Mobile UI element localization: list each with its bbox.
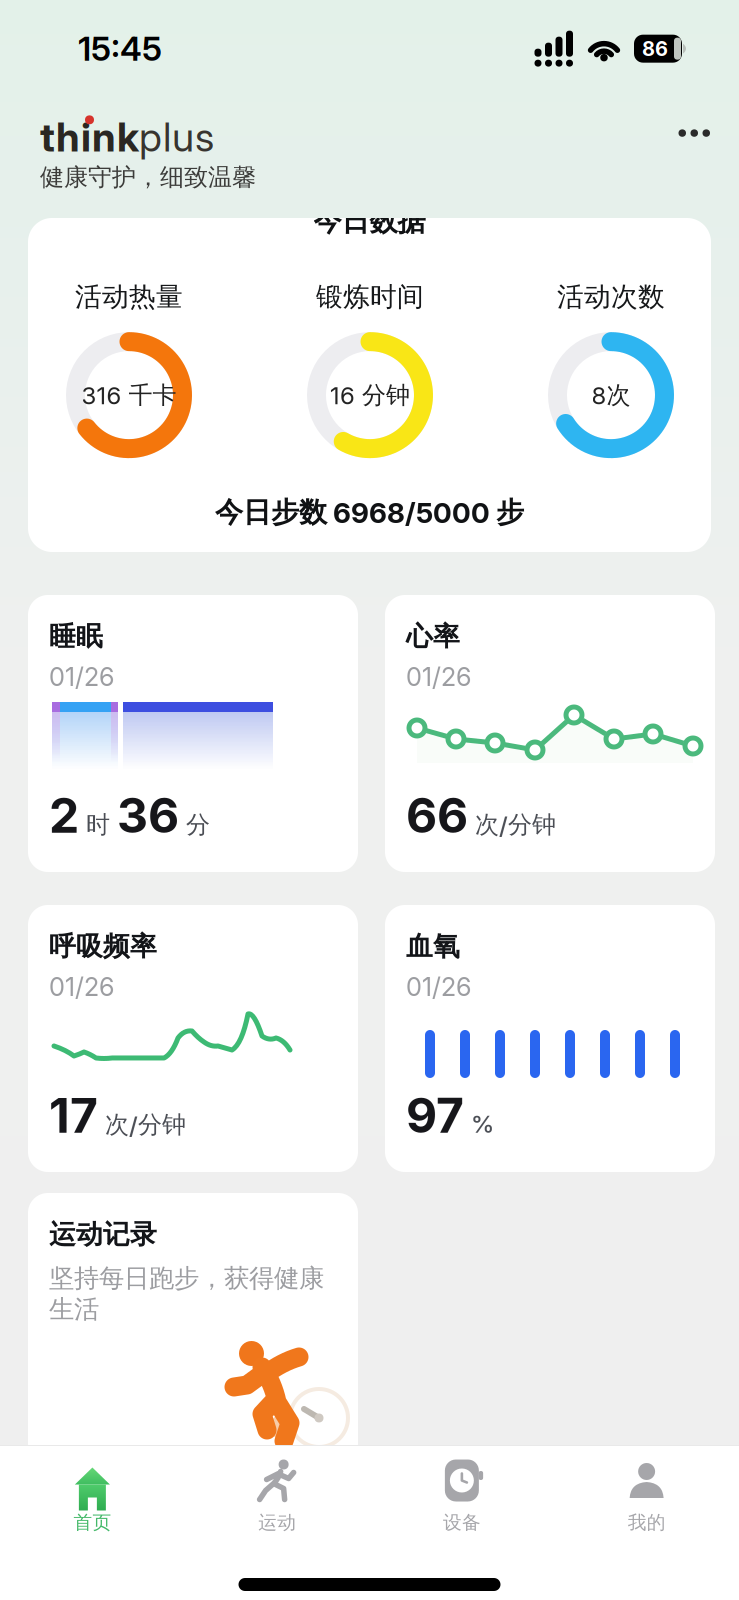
staticText: 运动记录 bbox=[49, 1218, 157, 1251]
button[interactable]: 设备 bbox=[369, 1459, 554, 1534]
button[interactable]: 呼吸频率 bbox=[28, 905, 358, 1172]
staticText: 今日步数 6968/5000 步 bbox=[215, 495, 524, 529]
staticText: 2 bbox=[49, 787, 79, 844]
staticText: 316 千卡 bbox=[81, 380, 176, 410]
staticText: 86 bbox=[642, 37, 668, 60]
staticText: 心率 bbox=[406, 620, 460, 653]
staticText: 运动 bbox=[258, 1511, 296, 1534]
staticText: 8次 bbox=[591, 380, 630, 410]
button[interactable]: 我的 bbox=[554, 1459, 739, 1534]
button[interactable]: Home bbox=[238, 1578, 500, 1591]
button[interactable]: 运动记录 bbox=[28, 1193, 358, 1463]
staticText: 次/分钟 bbox=[475, 810, 556, 839]
staticText: 活动热量 bbox=[75, 280, 183, 313]
staticText: 设备 bbox=[443, 1511, 481, 1534]
staticText: 我的 bbox=[628, 1511, 666, 1534]
staticText: 01/26 bbox=[49, 662, 114, 692]
staticText: 睡眠 bbox=[49, 620, 103, 653]
button[interactable]: 血氧 bbox=[385, 905, 715, 1172]
staticText: 36 bbox=[117, 787, 179, 844]
staticText: 健康守护，细致温馨 bbox=[40, 162, 256, 192]
staticText: 活动次数 bbox=[557, 280, 665, 313]
staticText: think bbox=[40, 113, 139, 160]
staticText: 16 分钟 bbox=[330, 380, 410, 410]
staticText: 分 bbox=[186, 810, 210, 839]
staticText: 首页 bbox=[73, 1511, 111, 1534]
staticText: 次/分钟 bbox=[105, 1110, 186, 1139]
staticText: 15:45 bbox=[78, 29, 162, 68]
button[interactable]: 运动 bbox=[185, 1459, 370, 1534]
button[interactable]: 睡眠 bbox=[28, 595, 358, 872]
staticText: 血氧 bbox=[406, 930, 460, 963]
staticText: % bbox=[471, 1110, 494, 1138]
button[interactable]: 心率 bbox=[385, 595, 715, 872]
staticText: 01/26 bbox=[49, 972, 114, 1002]
staticText: plus bbox=[139, 113, 214, 160]
button[interactable]: More bbox=[678, 113, 739, 137]
staticText: 17 bbox=[49, 1087, 98, 1144]
staticText: 66 bbox=[406, 787, 468, 844]
staticText: 01/26 bbox=[406, 662, 471, 692]
staticText: 呼吸频率 bbox=[49, 930, 157, 963]
staticText: 坚持每日跑步，获得健康 生活 bbox=[49, 1263, 324, 1325]
staticText: 97 bbox=[406, 1087, 464, 1144]
staticText: 时 bbox=[86, 810, 110, 839]
staticText: 锻炼时间 bbox=[316, 280, 424, 313]
button[interactable]: 首页 bbox=[0, 1459, 185, 1534]
staticText: 今日数据 bbox=[313, 204, 425, 238]
staticText: 01/26 bbox=[406, 972, 471, 1002]
